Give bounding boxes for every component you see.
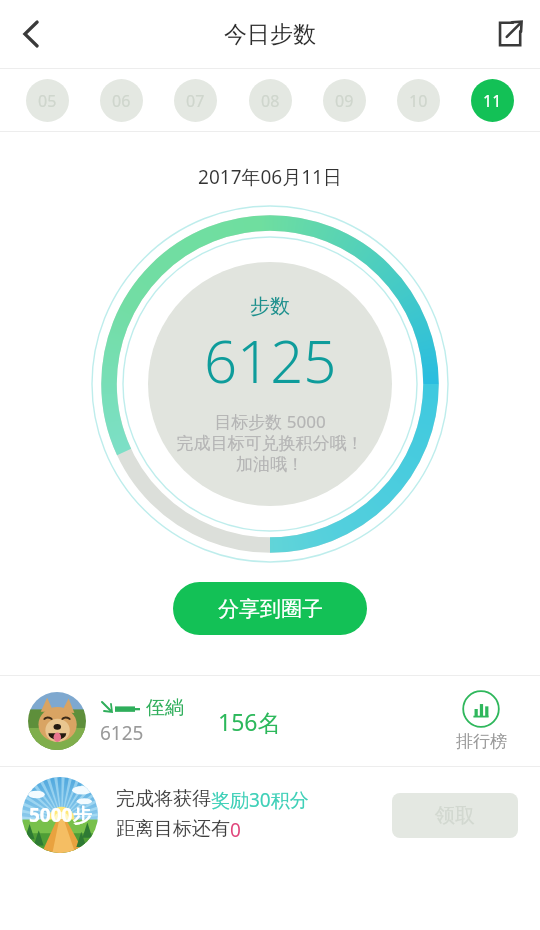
staticText: 排行榜 — [456, 731, 507, 752]
staticText: 2017年06月11日 — [0, 164, 540, 190]
button[interactable]: 排行榜 — [442, 690, 520, 752]
staticText: 奖励30积分 — [211, 787, 309, 813]
staticText: 领取 — [435, 803, 475, 828]
button[interactable]: 侄緔 — [0, 676, 540, 766]
staticText: 05 — [38, 90, 57, 112]
staticText: 156名 — [218, 706, 281, 737]
staticText: 0 — [230, 817, 241, 843]
staticText: 加油哦！ — [145, 454, 395, 475]
button[interactable]: 09 — [323, 79, 366, 122]
staticText: 侄緔 — [146, 696, 184, 720]
staticText: 步数 — [250, 294, 290, 319]
staticText: 10 — [409, 90, 428, 112]
staticText: 08 — [261, 90, 280, 112]
button[interactable]: 分享到圈子 — [173, 582, 367, 635]
staticText: 11 — [483, 90, 502, 112]
staticText: 分享到圈子 — [218, 596, 323, 622]
staticText: 今日步数 — [224, 20, 316, 49]
button[interactable]: 07 — [174, 79, 217, 122]
button[interactable]: 10 — [397, 79, 440, 122]
button[interactable]: 11 — [471, 79, 514, 122]
staticText: 完成目标可兑换积分哦！ — [145, 433, 395, 454]
staticText: 6125 — [204, 321, 337, 400]
button[interactable]: Back — [0, 3, 62, 65]
button[interactable]: 05 — [26, 79, 69, 122]
button[interactable]: Share — [478, 3, 540, 65]
staticText: 目标步数 5000 — [145, 410, 395, 433]
staticText: 距离目标还有 — [116, 817, 230, 841]
staticText: 09 — [335, 90, 354, 112]
button[interactable]: 08 — [249, 79, 292, 122]
button[interactable]: 领取 — [392, 793, 518, 838]
staticText: 完成将获得 — [116, 787, 211, 811]
staticText: 07 — [186, 90, 205, 112]
staticText: 06 — [112, 90, 131, 112]
staticText: 6125 — [100, 720, 144, 746]
staticText: 5000步 — [29, 802, 92, 828]
button[interactable]: 06 — [100, 79, 143, 122]
